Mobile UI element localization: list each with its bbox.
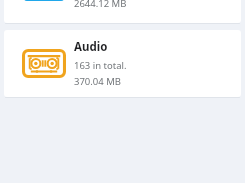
other: Audio <box>22 49 66 78</box>
other: Video <box>24 0 64 1</box>
staticText: Audio <box>74 39 108 55</box>
staticText: 370.04 MB <box>74 75 121 88</box>
button[interactable]: Video <box>4 0 241 24</box>
button[interactable]: Audio <box>4 30 241 98</box>
staticText: 163 in total. <box>74 59 127 72</box>
staticText: 2644.12 MB <box>74 0 127 10</box>
